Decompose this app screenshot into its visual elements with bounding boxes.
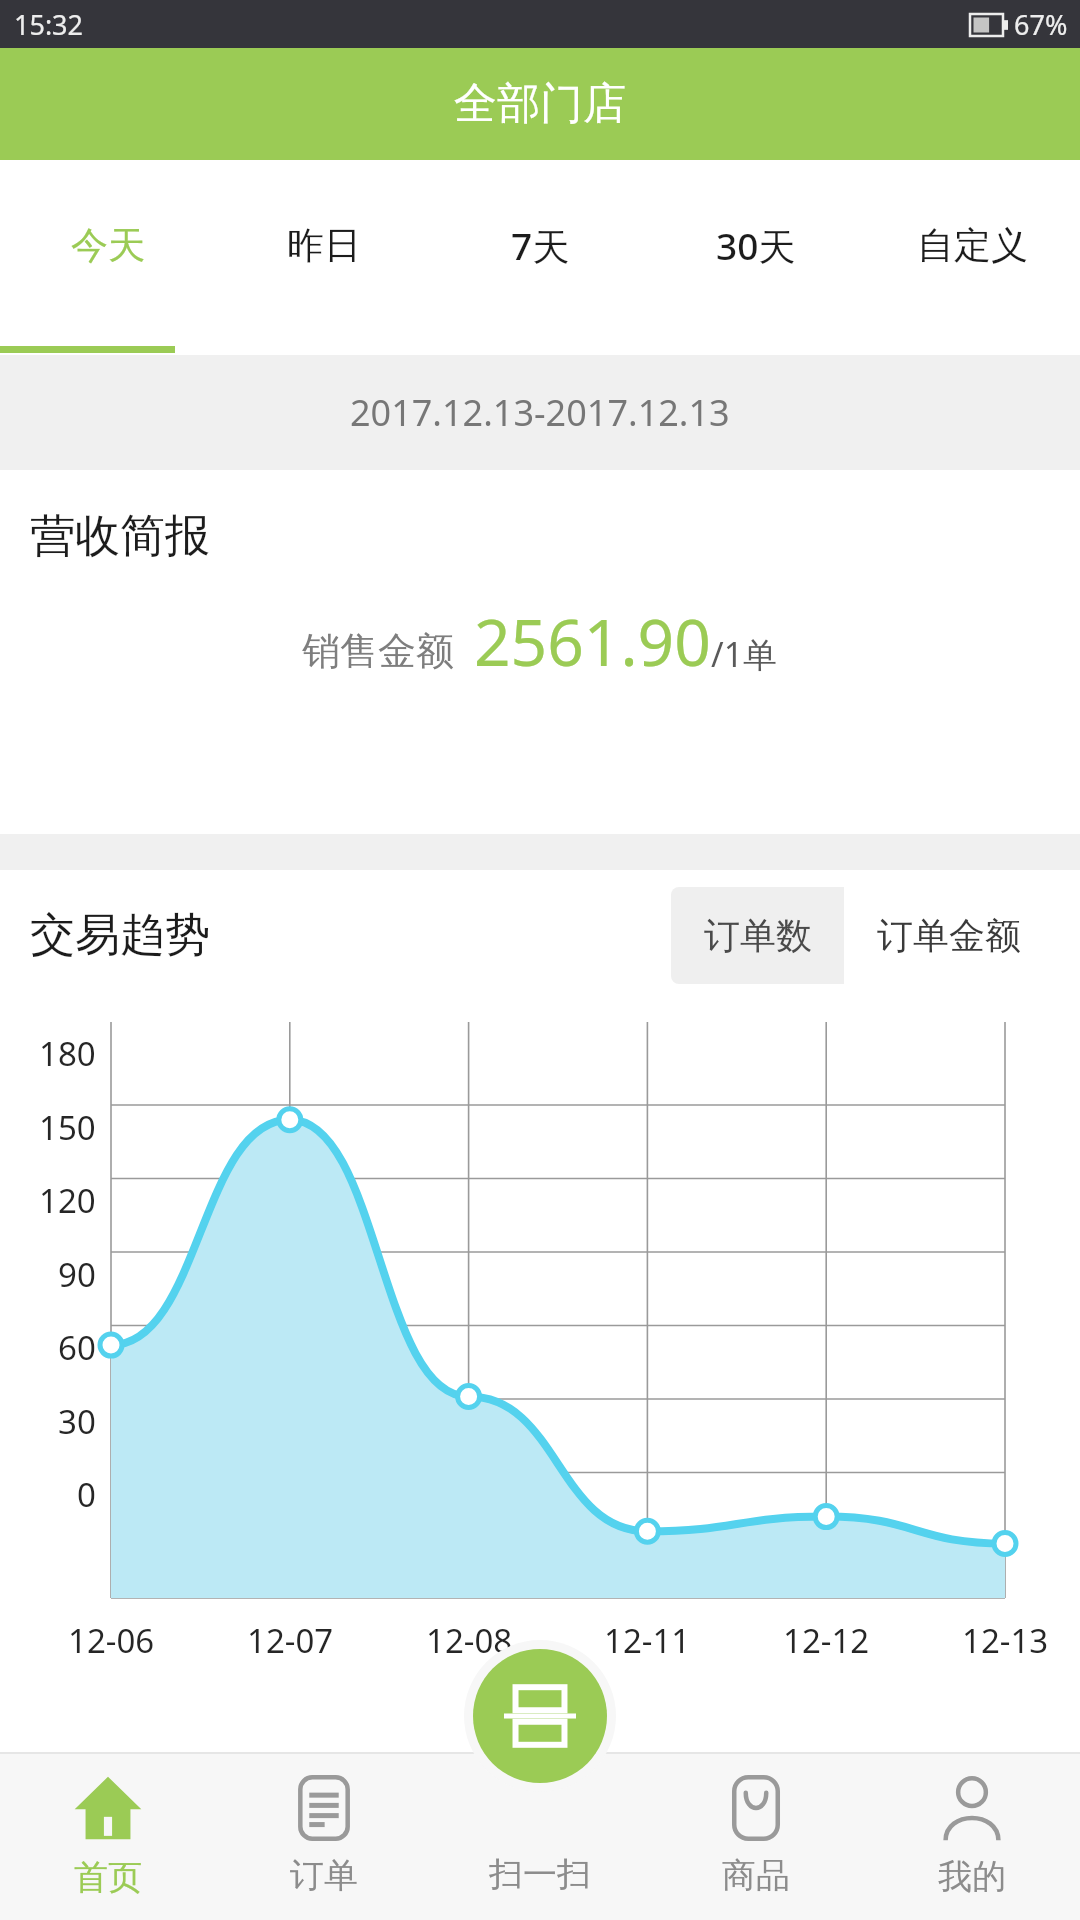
staticText: 12-07	[247, 1618, 334, 1663]
button[interactable]: 昨日	[216, 160, 432, 330]
staticText: 12-08	[426, 1618, 513, 1663]
staticText: 12-13	[962, 1618, 1049, 1663]
button[interactable]: 扫一扫	[432, 1752, 648, 1920]
staticText: 12-12	[783, 1618, 870, 1663]
staticText: 销售金额	[302, 627, 454, 675]
button[interactable]: 订单数	[671, 887, 844, 984]
button[interactable]: 今天	[0, 160, 216, 330]
staticText: 2017.12.13-2017.12.13	[350, 388, 730, 437]
button[interactable]: 30天	[648, 160, 864, 330]
staticText: 12-06	[68, 1618, 155, 1663]
button[interactable]: 2017.12.13-2017.12.13	[0, 355, 1080, 470]
staticText: 订单数	[704, 913, 812, 958]
staticText: 交易趋势	[30, 907, 210, 964]
staticText: 全部门店	[454, 77, 626, 131]
staticText: 营收简报	[30, 508, 210, 565]
button[interactable]: 扫一扫	[473, 1649, 607, 1783]
staticText: 首页	[74, 1856, 142, 1899]
staticText: 12-11	[604, 1618, 691, 1663]
staticText: 15:32	[14, 6, 84, 43]
staticText: 2561.90	[474, 598, 711, 685]
staticText: /1单	[711, 631, 778, 677]
staticText: 我的	[938, 1855, 1006, 1898]
staticText: 昨日	[287, 222, 361, 269]
staticText: 7天	[511, 220, 570, 271]
button[interactable]: 7天	[432, 160, 648, 330]
staticText: 30	[58, 1399, 96, 1444]
button[interactable]: 我的	[864, 1752, 1080, 1920]
staticText: 订单	[290, 1854, 358, 1897]
staticText: 180	[39, 1031, 96, 1076]
button[interactable]: 自定义	[864, 160, 1080, 330]
button[interactable]: 订单	[216, 1752, 432, 1920]
staticText: 150	[39, 1105, 96, 1150]
staticText: 67%	[1014, 6, 1068, 43]
staticText: 30天	[716, 220, 796, 271]
button[interactable]: 全部门店	[0, 48, 1080, 160]
staticText: 订单金额	[877, 913, 1021, 958]
staticText: 扫一扫	[489, 1853, 591, 1896]
button[interactable]: 商品	[648, 1752, 864, 1920]
staticText: 120	[39, 1178, 96, 1223]
button[interactable]: 首页	[0, 1752, 216, 1920]
staticText: 90	[58, 1252, 96, 1297]
button[interactable]: 订单金额	[844, 887, 1054, 984]
staticText: 60	[58, 1325, 96, 1370]
staticText: 自定义	[917, 222, 1028, 269]
staticText: 商品	[722, 1854, 790, 1897]
staticText: 今天	[71, 222, 145, 269]
staticText: 0	[77, 1472, 96, 1517]
